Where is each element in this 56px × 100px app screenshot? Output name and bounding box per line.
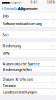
staticText: > bbox=[52, 13, 54, 18]
staticText: Allgemein bbox=[18, 6, 38, 11]
staticText: > bbox=[52, 32, 54, 37]
button[interactable]: Softwareaktualisierung bbox=[0, 20, 56, 27]
button[interactable]: Siri bbox=[0, 31, 56, 38]
button[interactable]: Landeseinstellungen bbox=[0, 89, 56, 95]
staticText: Automatische Sperre bbox=[3, 61, 40, 66]
staticText: 100% bbox=[46, 1, 54, 4]
button[interactable]: Tastatur bbox=[0, 82, 56, 88]
button[interactable]: ‹ bbox=[0, 5, 26, 12]
staticText: Einstellungen bbox=[4, 6, 26, 11]
staticText: > bbox=[52, 76, 54, 82]
staticText: > bbox=[52, 89, 54, 94]
staticText: Softwareaktualisierung bbox=[3, 21, 42, 26]
staticText: ●●●●○ Carrier bbox=[2, 1, 22, 4]
staticText: > bbox=[52, 83, 54, 88]
staticText: > bbox=[52, 43, 54, 48]
staticText: VPN bbox=[3, 51, 10, 56]
button[interactable]: VPN bbox=[0, 50, 56, 57]
staticText: Landeseinstellungen bbox=[3, 89, 37, 94]
staticText: > bbox=[52, 51, 54, 56]
staticText: > bbox=[52, 61, 54, 66]
staticText: Bedienung bbox=[3, 43, 21, 48]
staticText: > bbox=[52, 67, 54, 72]
staticText: Siri bbox=[3, 32, 9, 37]
staticText: Datum & Uhrzeit bbox=[3, 76, 33, 82]
staticText: 9:41 bbox=[30, 1, 37, 4]
button[interactable]: Datum & Uhrzeit bbox=[0, 76, 56, 82]
button[interactable]: Automatische Sperre bbox=[0, 61, 56, 66]
staticText: ‹ bbox=[1, 5, 3, 12]
button[interactable]: Bedienungshilfen bbox=[0, 67, 56, 72]
staticText: > bbox=[52, 21, 54, 26]
button[interactable]: Bedienung bbox=[0, 42, 56, 49]
staticText: Tastatur bbox=[3, 83, 17, 88]
staticText: Info bbox=[3, 13, 9, 18]
button[interactable]: Info bbox=[0, 12, 56, 19]
staticText: Bedienungshilfen bbox=[3, 67, 32, 72]
